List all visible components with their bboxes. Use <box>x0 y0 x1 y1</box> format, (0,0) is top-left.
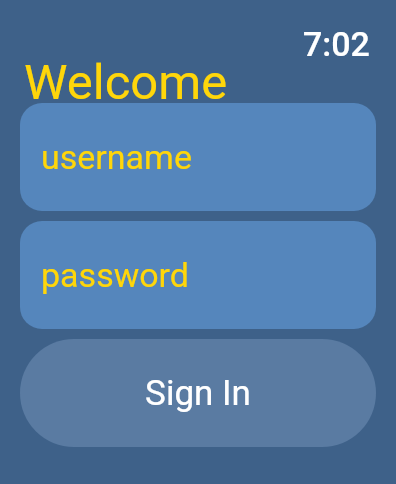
staticText: password <box>41 255 190 295</box>
staticText: Welcome <box>24 54 228 111</box>
button[interactable]: password <box>20 221 376 329</box>
staticText: Sign In <box>145 373 251 414</box>
staticText: username <box>41 137 192 177</box>
staticText: 7:02 <box>303 24 370 64</box>
button[interactable]: Sign In <box>20 339 376 447</box>
button[interactable]: username <box>20 103 376 211</box>
